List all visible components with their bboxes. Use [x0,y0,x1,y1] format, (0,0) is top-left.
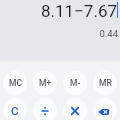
button[interactable]: Divide [33,98,57,120]
staticText: M- [70,78,81,88]
button[interactable]: Multiply [63,98,87,120]
button[interactable]: Clear [3,98,27,120]
staticText: 0.44 [99,28,118,39]
button[interactable]: Memory recall [93,71,117,95]
staticText: M+ [39,78,52,88]
staticText: C [11,104,19,117]
button[interactable]: Memory subtract [63,71,87,95]
button[interactable]: Memory add [33,71,57,95]
staticText: MR [99,78,112,88]
staticText: MC [9,78,22,88]
button[interactable]: Memory clear [3,71,27,95]
staticText: 8.11−7.67 [40,1,117,21]
button[interactable]: Backspace [93,98,117,120]
